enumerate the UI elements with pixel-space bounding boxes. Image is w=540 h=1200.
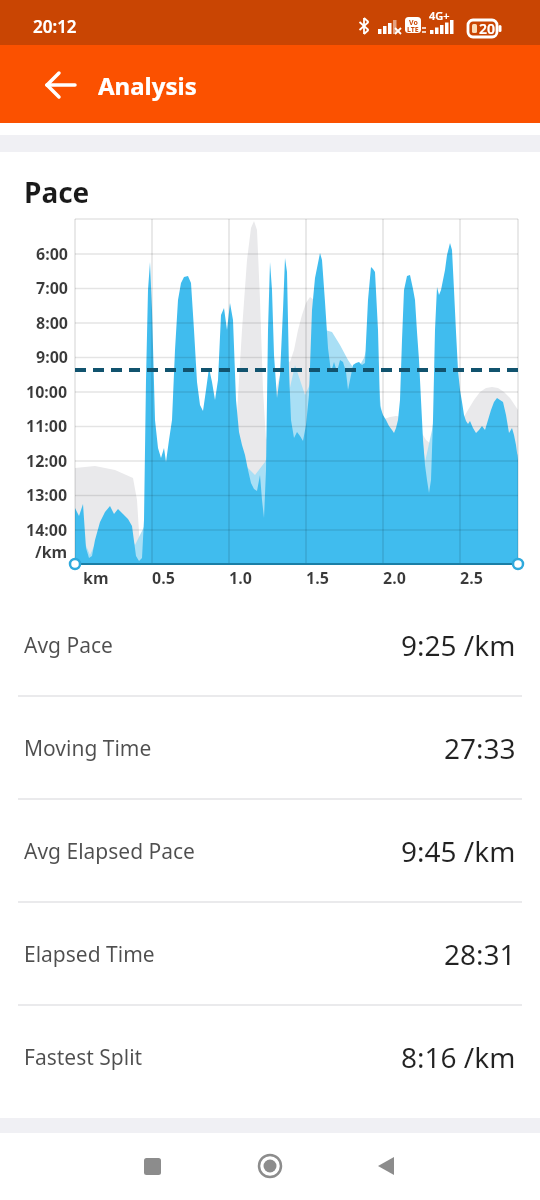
- staticText: 8:00: [36, 312, 68, 334]
- button[interactable]: [24, 63, 84, 107]
- button[interactable]: [112, 1136, 192, 1196]
- staticText: 2.5: [460, 567, 483, 589]
- staticText: 8:16 /km: [401, 1038, 516, 1076]
- staticText: 20: [479, 19, 496, 38]
- staticText: 13:00: [26, 484, 68, 506]
- staticText: LTE: [407, 25, 419, 35]
- staticText: 1.0: [229, 567, 252, 589]
- button[interactable]: [230, 1136, 310, 1196]
- staticText: Avg Pace: [24, 631, 113, 660]
- staticText: 4G+: [429, 8, 450, 23]
- staticText: 27:33: [444, 729, 516, 767]
- staticText: 6:00: [36, 243, 68, 265]
- button[interactable]: [0, 800, 540, 902]
- staticText: 14:00: [26, 519, 68, 541]
- staticText: 10:00: [26, 381, 68, 403]
- button[interactable]: [0, 1006, 540, 1108]
- staticText: 7:00: [36, 277, 68, 299]
- staticText: 11:00: [26, 415, 68, 437]
- staticText: Avg Elapsed Pace: [24, 837, 195, 866]
- staticText: 28:31: [444, 935, 516, 973]
- staticText: Fastest Split: [24, 1043, 143, 1072]
- staticText: Vo: [409, 18, 418, 28]
- button[interactable]: [0, 594, 540, 696]
- staticText: Pace: [24, 173, 90, 211]
- staticText: Analysis: [98, 69, 197, 102]
- staticText: km: [83, 567, 109, 589]
- staticText: 0.5: [152, 567, 175, 589]
- button[interactable]: [346, 1136, 426, 1196]
- button[interactable]: [0, 697, 540, 799]
- staticText: Elapsed Time: [24, 940, 155, 969]
- staticText: 9:25 /km: [401, 626, 516, 664]
- staticText: 9:00: [36, 346, 68, 368]
- staticText: Moving Time: [24, 734, 152, 763]
- staticText: /km: [35, 541, 68, 563]
- staticText: 12:00: [26, 450, 68, 472]
- button[interactable]: [0, 903, 540, 1005]
- staticText: 2.0: [383, 567, 406, 589]
- staticText: 20:12: [33, 15, 77, 38]
- staticText: 1.5: [306, 567, 329, 589]
- staticText: 9:45 /km: [401, 832, 516, 870]
